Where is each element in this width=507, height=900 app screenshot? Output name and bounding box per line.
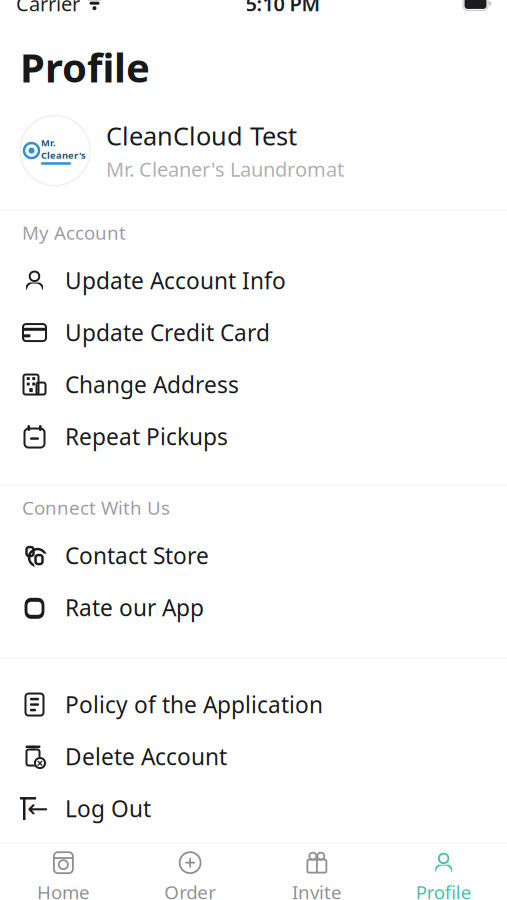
button[interactable]: ← [0,783,507,835]
staticText: Rate our App [65,592,204,623]
staticText: Profile [416,880,472,900]
button[interactable]: Rate our App [0,582,507,634]
staticText: Home [37,880,90,900]
staticText: Carrier [16,0,80,17]
staticText: ← [27,794,48,823]
staticText: Repeat Pickups [65,421,228,452]
button[interactable]: Update Credit Card [0,307,507,359]
button[interactable]: Change Address [0,359,507,411]
staticText: My Account [22,220,126,245]
staticText: Update Credit Card [65,317,270,348]
button[interactable]: Policy of the Application [0,679,507,731]
staticText: Profile [20,40,150,93]
button[interactable]: × [0,731,507,783]
staticText: Mr. Cleaner's Laundromat [106,156,344,182]
button[interactable]: Home [0,846,127,900]
staticText: Update Account Info [65,265,286,296]
staticText: Policy of the Application [65,689,323,720]
button[interactable]: Repeat Pickups [0,411,507,463]
button[interactable]: Profile [380,846,507,900]
staticText: Contact Store [65,540,209,571]
staticText: Invite [292,880,342,900]
button[interactable]: Contact Store [0,530,507,582]
staticText: 5:10 PM [245,0,320,17]
staticText: Order [164,880,216,900]
staticText: Mr. Cleaner's [41,136,86,161]
staticText: CleanCloud Test [106,119,297,153]
staticText: × [36,755,43,771]
staticText: Log Out [65,793,151,824]
staticText: Delete Account [65,741,227,772]
staticText: Change Address [65,369,239,400]
button[interactable]: Invite [253,846,380,900]
button[interactable]: Update Account Info [0,255,507,307]
staticText: Connect With Us [22,495,170,520]
button[interactable]: Order [127,846,254,900]
